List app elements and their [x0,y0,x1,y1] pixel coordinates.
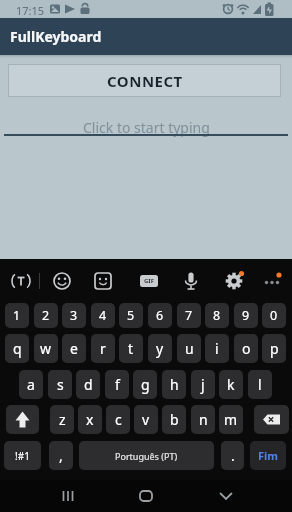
button[interactable]: g [133,370,157,399]
button[interactable]: u [177,334,201,363]
staticText: m [224,410,238,429]
staticText: b [170,410,179,429]
button[interactable]: o [234,334,258,363]
button[interactable]: q [5,334,29,363]
button[interactable]: , [49,441,73,470]
staticText: Português (PT) [115,450,178,462]
staticText: FullKeyboard [10,27,102,46]
button[interactable]: f [105,370,129,399]
staticText: d [84,375,93,394]
staticText: x [86,410,94,429]
staticText: Fim [258,448,279,463]
staticText: GIF [144,277,154,285]
button[interactable] [47,266,77,296]
button[interactable] [219,266,249,296]
button[interactable]: b [162,405,186,434]
button[interactable]: d [76,370,100,399]
button[interactable]: x [78,405,102,434]
staticText: e [70,339,78,358]
staticText: i [215,339,219,358]
staticText: s [57,375,64,394]
staticText: 1 [13,307,21,324]
staticText: l [258,375,262,394]
staticText: k [227,375,235,394]
staticText: 2 [42,307,50,324]
staticText: u [185,339,194,358]
staticText: 7 [185,307,193,324]
staticText: 17:15 [16,3,45,18]
staticText: f [115,375,120,394]
staticText: c [115,410,122,429]
staticText: w [40,339,52,358]
button[interactable] [254,405,289,434]
staticText: y [156,339,164,358]
staticText: 5 [127,307,135,324]
button[interactable]: s [48,370,72,399]
staticText: n [199,410,208,429]
button[interactable]: 7 [177,303,201,328]
staticText: , [59,446,63,465]
button[interactable] [176,266,206,296]
button[interactable]: j [191,370,215,399]
button[interactable]: a [19,370,43,399]
staticText: 0 [270,307,278,324]
staticText: r [100,339,106,358]
staticText: 4 [99,307,107,324]
button[interactable]: p [262,334,286,363]
button[interactable]: n [191,405,215,434]
button[interactable] [6,266,36,296]
button[interactable]: i [205,334,229,363]
button[interactable] [257,266,287,296]
staticText: !#1 [15,449,30,463]
button[interactable] [131,481,161,511]
button[interactable]: 2 [34,303,58,328]
button[interactable]: h [162,370,186,399]
button[interactable]: l [248,370,272,399]
staticText: 6 [156,307,164,324]
staticText: q [13,339,22,358]
button[interactable]: Fim [250,441,286,470]
button[interactable] [53,481,83,511]
button[interactable]: r [91,334,115,363]
staticText: CONNECT [107,71,183,91]
button[interactable]: CONNECT [8,64,281,97]
button[interactable]: 9 [234,303,258,328]
button[interactable]: 3 [62,303,86,328]
button[interactable]: v [134,405,158,434]
staticText: j [201,375,205,394]
button[interactable] [211,481,241,511]
button[interactable]: e [62,334,86,363]
button[interactable]: !#1 [4,441,41,470]
staticText: z [59,410,66,429]
staticText: g [141,375,150,394]
button[interactable]: . [221,441,244,470]
button[interactable]: w [34,334,58,363]
button[interactable]: 4 [91,303,115,328]
staticText: o [242,339,251,358]
staticText: t [128,339,134,358]
button[interactable]: 6 [148,303,172,328]
staticText: v [142,410,150,429]
button[interactable]: Português (PT) [79,441,214,470]
staticText: . [231,446,235,465]
button[interactable]: 5 [119,303,143,328]
button[interactable]: t [119,334,143,363]
button[interactable]: y [148,334,172,363]
button[interactable]: 1 [5,303,29,328]
button[interactable] [6,405,39,434]
staticText: 9 [242,307,250,324]
staticText: a [27,375,35,394]
button[interactable]: k [219,370,243,399]
staticText: p [270,339,279,358]
button[interactable]: 0 [262,303,286,328]
button[interactable]: c [106,405,130,434]
button[interactable] [88,266,118,296]
button[interactable]: m [219,405,243,434]
staticText: h [170,375,179,394]
button[interactable]: z [50,405,74,434]
button[interactable]: GIF [140,275,158,287]
button[interactable]: 8 [205,303,229,328]
button[interactable]: Click to start typing [83,118,210,137]
staticText: 3 [70,307,78,324]
staticText: 8 [213,307,221,324]
